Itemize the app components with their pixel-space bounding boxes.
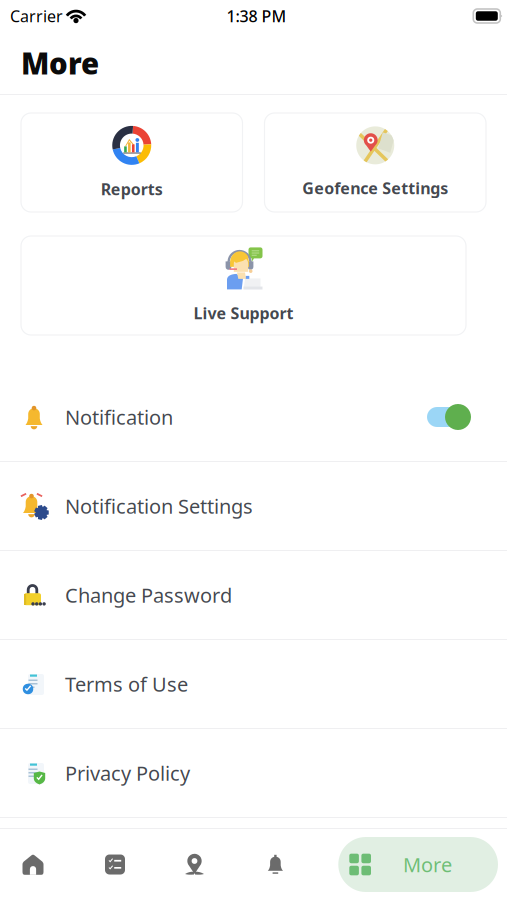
button[interactable]: Terms of Use (0, 640, 507, 728)
staticText: Reports (101, 178, 163, 200)
button[interactable]: Geofence Settings (264, 113, 486, 212)
staticText: More (21, 43, 99, 82)
staticText: Geofence Settings (302, 177, 448, 199)
button[interactable]: Change Password (0, 551, 507, 639)
button[interactable]: Map (154, 829, 235, 900)
staticText: More (403, 851, 452, 878)
button[interactable]: Notification Settings (0, 462, 507, 550)
button[interactable]: Notification (0, 373, 507, 461)
staticText: Notification (65, 404, 173, 430)
button[interactable]: Live Support (21, 236, 466, 335)
staticText: Carrier (10, 5, 63, 27)
button[interactable]: Home (0, 829, 66, 900)
button[interactable]: Alerts (235, 829, 316, 900)
button[interactable]: Notification toggle (427, 403, 471, 431)
staticText: 1:38 PM (226, 5, 286, 27)
staticText: Privacy Policy (65, 760, 190, 786)
button[interactable]: More (338, 837, 498, 892)
staticText: Change Password (65, 582, 232, 608)
staticText: Notification Settings (65, 493, 253, 519)
staticText: Terms of Use (65, 671, 188, 697)
button[interactable]: Tasks (66, 829, 154, 900)
button[interactable]: Reports (21, 113, 242, 212)
button[interactable]: Privacy Policy (0, 729, 507, 817)
staticText: Live Support (193, 302, 293, 324)
